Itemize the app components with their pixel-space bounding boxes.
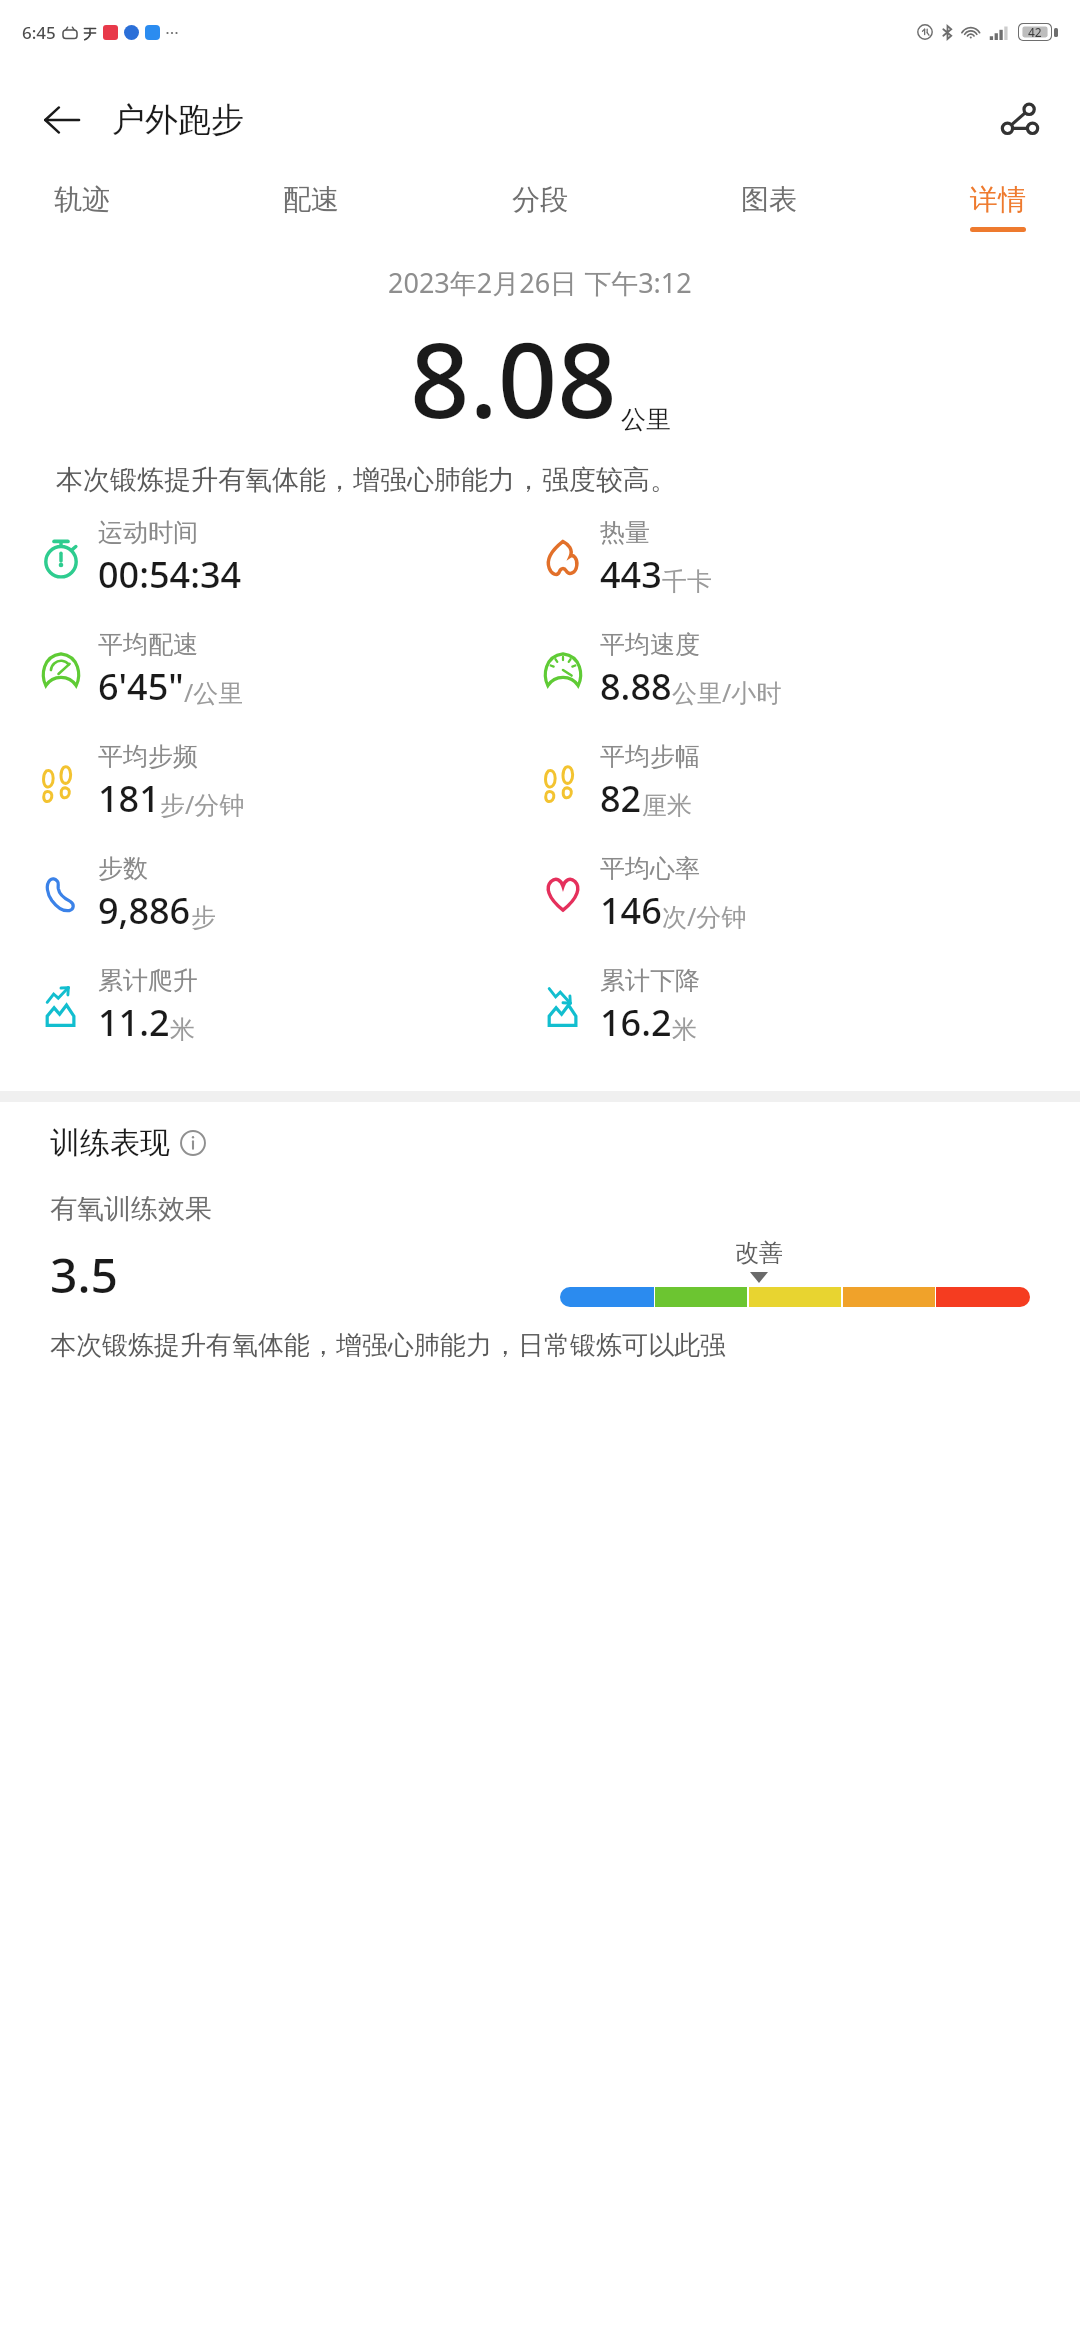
staticText: 82 [600,774,642,823]
other: 说明 [180,1130,206,1156]
staticText: 次/分钟 [662,899,747,933]
staticText: 2023年2月26日 下午3:12 [388,264,692,301]
button[interactable]: 平均步幅 [540,737,1042,827]
staticText: 8.08 [410,307,617,449]
staticText: 3.5 [50,1242,118,1307]
button[interactable]: 运动时间 [38,513,540,603]
staticText: 配速 [283,182,339,217]
staticText: 有氧训练效果 [50,1192,212,1226]
staticText: 公里/小时 [672,675,782,709]
staticText: 00:54:34 [98,550,242,599]
button[interactable]: 累计下降 [540,961,1042,1051]
staticText: 图表 [741,182,797,217]
staticText: 146 [600,886,662,935]
staticText: 6:45 [22,21,56,44]
button[interactable]: 图表 [729,176,809,238]
staticText: 训练表现 [50,1124,170,1162]
button[interactable]: 热量 [540,513,1042,603]
button[interactable]: 详情 [958,176,1038,238]
staticText: 本次锻炼提升有氧体能，增强心肺能力，强度较高。 [56,463,1024,497]
staticText: 运动时间 [98,517,198,548]
staticText: 步/分钟 [160,787,245,821]
staticText: 改善 [735,1238,783,1268]
staticText: 步 [191,902,216,933]
button[interactable]: 平均步频 [38,737,540,827]
staticText: 本次锻炼提升有氧体能，增强心肺能力，日常锻炼可以此强 [50,1329,726,1362]
staticText: 米 [672,1014,697,1045]
button[interactable]: 累计爬升 [38,961,540,1051]
staticText: 累计下降 [600,965,700,996]
staticText: 平均速度 [600,629,700,660]
staticText: 米 [170,1014,195,1045]
staticText: 181 [98,774,160,823]
staticText: 42 [1028,24,1042,40]
staticText: 9,886 [98,886,191,935]
staticText: 分段 [512,182,568,217]
staticText: 轨迹 [54,182,110,217]
button[interactable]: 轨迹 [42,176,122,238]
button[interactable]: 平均速度 [540,625,1042,715]
staticText: 厘米 [642,790,692,821]
staticText: 千卡 [662,566,712,597]
staticText: 详情 [970,182,1026,217]
staticText: 户外跑步 [112,99,244,141]
staticText: 平均步幅 [600,741,700,772]
staticText: 平均心率 [600,853,700,884]
button[interactable]: 步数 [38,849,540,939]
staticText: 8.88 [600,662,672,711]
staticText: /公里 [184,675,244,709]
button[interactable]: 返回 [34,92,90,148]
staticText: 16.2 [600,998,672,1047]
staticText: 平均步频 [98,741,198,772]
button[interactable]: 分享 [990,90,1050,150]
button[interactable]: 训练表现 [50,1124,206,1162]
staticText: 443 [600,550,662,599]
staticText: 步数 [98,853,148,884]
staticText: 热量 [600,517,650,548]
staticText: 累计爬升 [98,965,198,996]
staticText: 11.2 [98,998,170,1047]
button[interactable]: 配速 [271,176,351,238]
button[interactable]: 分段 [500,176,580,238]
button[interactable]: 平均配速 [38,625,540,715]
staticText: 公里 [621,404,671,435]
button[interactable]: 平均心率 [540,849,1042,939]
staticText: 平均配速 [98,629,198,660]
staticText: 6'45" [98,662,184,711]
